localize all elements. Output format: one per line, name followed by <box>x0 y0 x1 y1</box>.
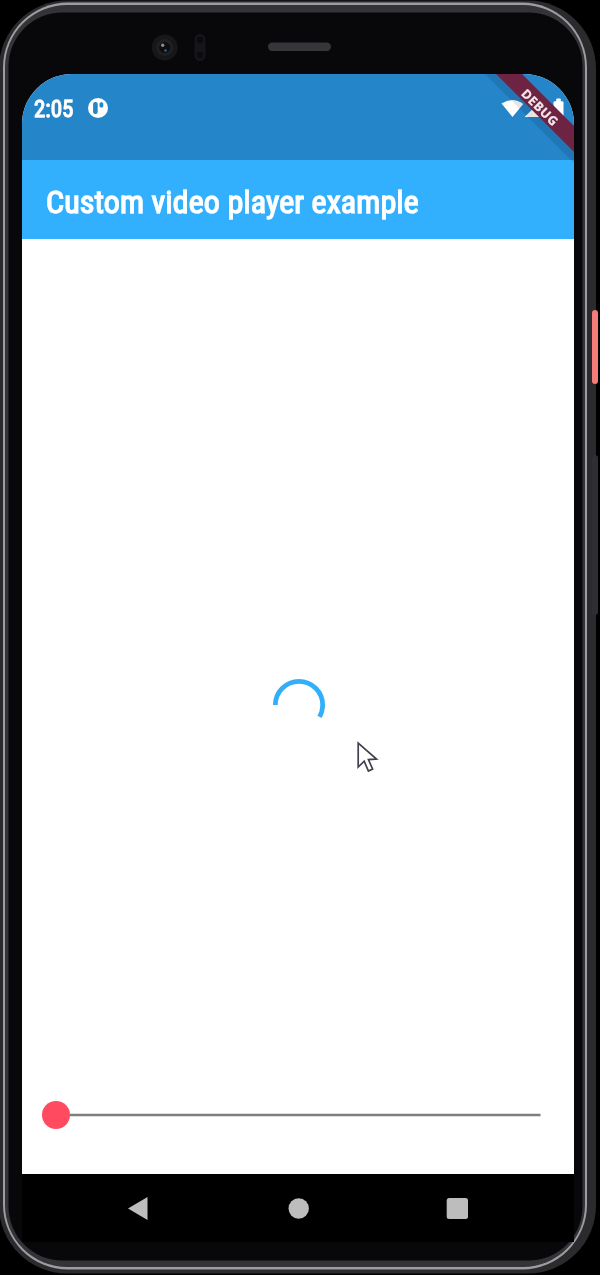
button[interactable]: Custom video player example <box>22 160 574 239</box>
staticText: DEBUG <box>518 85 562 129</box>
button[interactable]: Video position slider <box>22 1091 574 1139</box>
staticText: Custom video player example <box>46 183 419 221</box>
staticText: 2:05 <box>34 96 74 123</box>
